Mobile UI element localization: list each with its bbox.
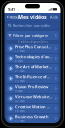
button[interactable]: Virtuose Website Build [6, 94, 58, 103]
button[interactable]: Business Growth [6, 114, 58, 123]
button[interactable]: Aide [50, 13, 58, 21]
staticText: Retour [9, 14, 20, 20]
button[interactable]: Creative Motion Design [6, 104, 58, 113]
staticText: 32 min [15, 99, 25, 103]
staticText: Technologies d'avenir [15, 54, 52, 59]
staticText: 12 min [15, 49, 25, 53]
button[interactable]: Retour [7, 13, 20, 21]
staticText: Filtrer par catégorie [13, 33, 48, 38]
staticText: Aide [50, 14, 58, 20]
staticText: 18 min [15, 109, 25, 113]
staticText: Mes vidéos [18, 13, 47, 21]
button[interactable]: Technologies d'avenir [6, 54, 58, 63]
button[interactable]: Prise Plus Consulting [6, 44, 58, 53]
staticText: Creative Motion Design [15, 104, 52, 109]
button[interactable]: Rechercher une vidéo [6, 22, 58, 29]
staticText: 15 min [15, 79, 25, 83]
staticText: 9 min [15, 89, 23, 93]
staticText: The Influence of Design [15, 74, 52, 79]
staticText: Virtuose Website Build [15, 94, 52, 99]
button[interactable]: Filtrer par catégorie [6, 31, 58, 40]
staticText: Prise Plus Consulting [15, 44, 52, 49]
button[interactable]: Vision Pro Review [6, 84, 58, 93]
staticText: 9:41 [8, 7, 15, 12]
staticText: Rechercher une vidéo [13, 23, 50, 28]
staticText: 21 min [15, 69, 25, 73]
staticText: 11 min [15, 119, 25, 123]
staticText: Business Growth [15, 114, 49, 119]
staticText: 8 vidéos disponibles [17, 40, 47, 44]
staticText: Vision Pro Review [15, 84, 48, 89]
button[interactable]: The Influence of Design [6, 74, 58, 83]
button[interactable]: The Art of Marketing [6, 64, 58, 73]
staticText: The Art of Marketing [15, 64, 52, 69]
staticText: 8 min [15, 59, 23, 63]
